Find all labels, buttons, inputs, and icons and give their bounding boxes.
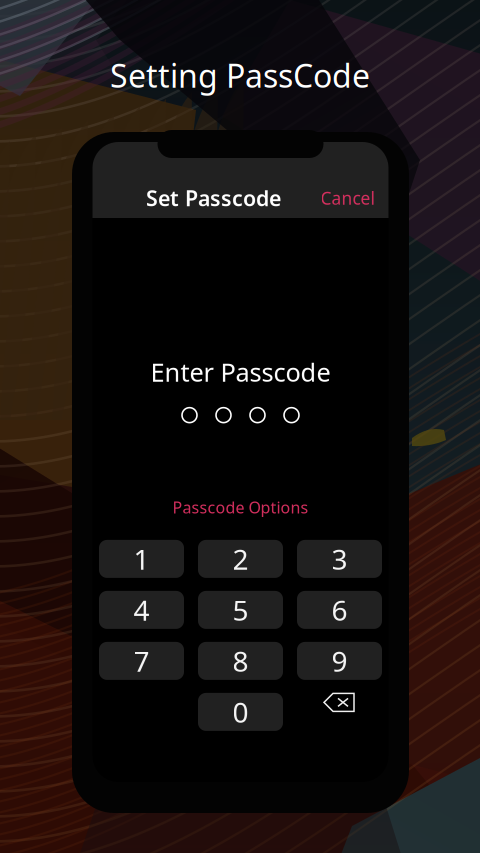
staticText: 9 — [331, 642, 347, 679]
button[interactable]: 6 — [297, 591, 382, 629]
staticText: Enter Passcode — [150, 355, 330, 389]
button[interactable]: 0 — [198, 693, 283, 731]
staticText: 3 — [331, 540, 347, 577]
button[interactable]: Passcode Options — [172, 497, 308, 518]
staticText: Passcode Options — [172, 497, 308, 518]
staticText: 0 — [232, 693, 248, 730]
staticText: 6 — [331, 591, 347, 628]
button[interactable]: 1 — [99, 540, 184, 578]
staticText: 2 — [232, 540, 248, 577]
button[interactable]: 9 — [297, 642, 382, 680]
staticText: Cancel — [320, 186, 374, 209]
button[interactable]: 2 — [198, 540, 283, 578]
button[interactable]: 5 — [198, 591, 283, 629]
staticText: 7 — [133, 642, 149, 679]
staticText: Set Passcode — [146, 184, 281, 212]
button[interactable]: 8 — [198, 642, 283, 680]
button[interactable]: Delete — [297, 693, 382, 731]
staticText: 4 — [133, 591, 149, 628]
button[interactable]: Cancel — [320, 186, 374, 209]
staticText: Setting PassCode — [110, 54, 370, 96]
staticText: 5 — [232, 591, 248, 628]
staticText: 8 — [232, 642, 248, 679]
staticText: 1 — [133, 540, 149, 577]
button[interactable]: 7 — [99, 642, 184, 680]
button[interactable]: 3 — [297, 540, 382, 578]
button[interactable]: 4 — [99, 591, 184, 629]
